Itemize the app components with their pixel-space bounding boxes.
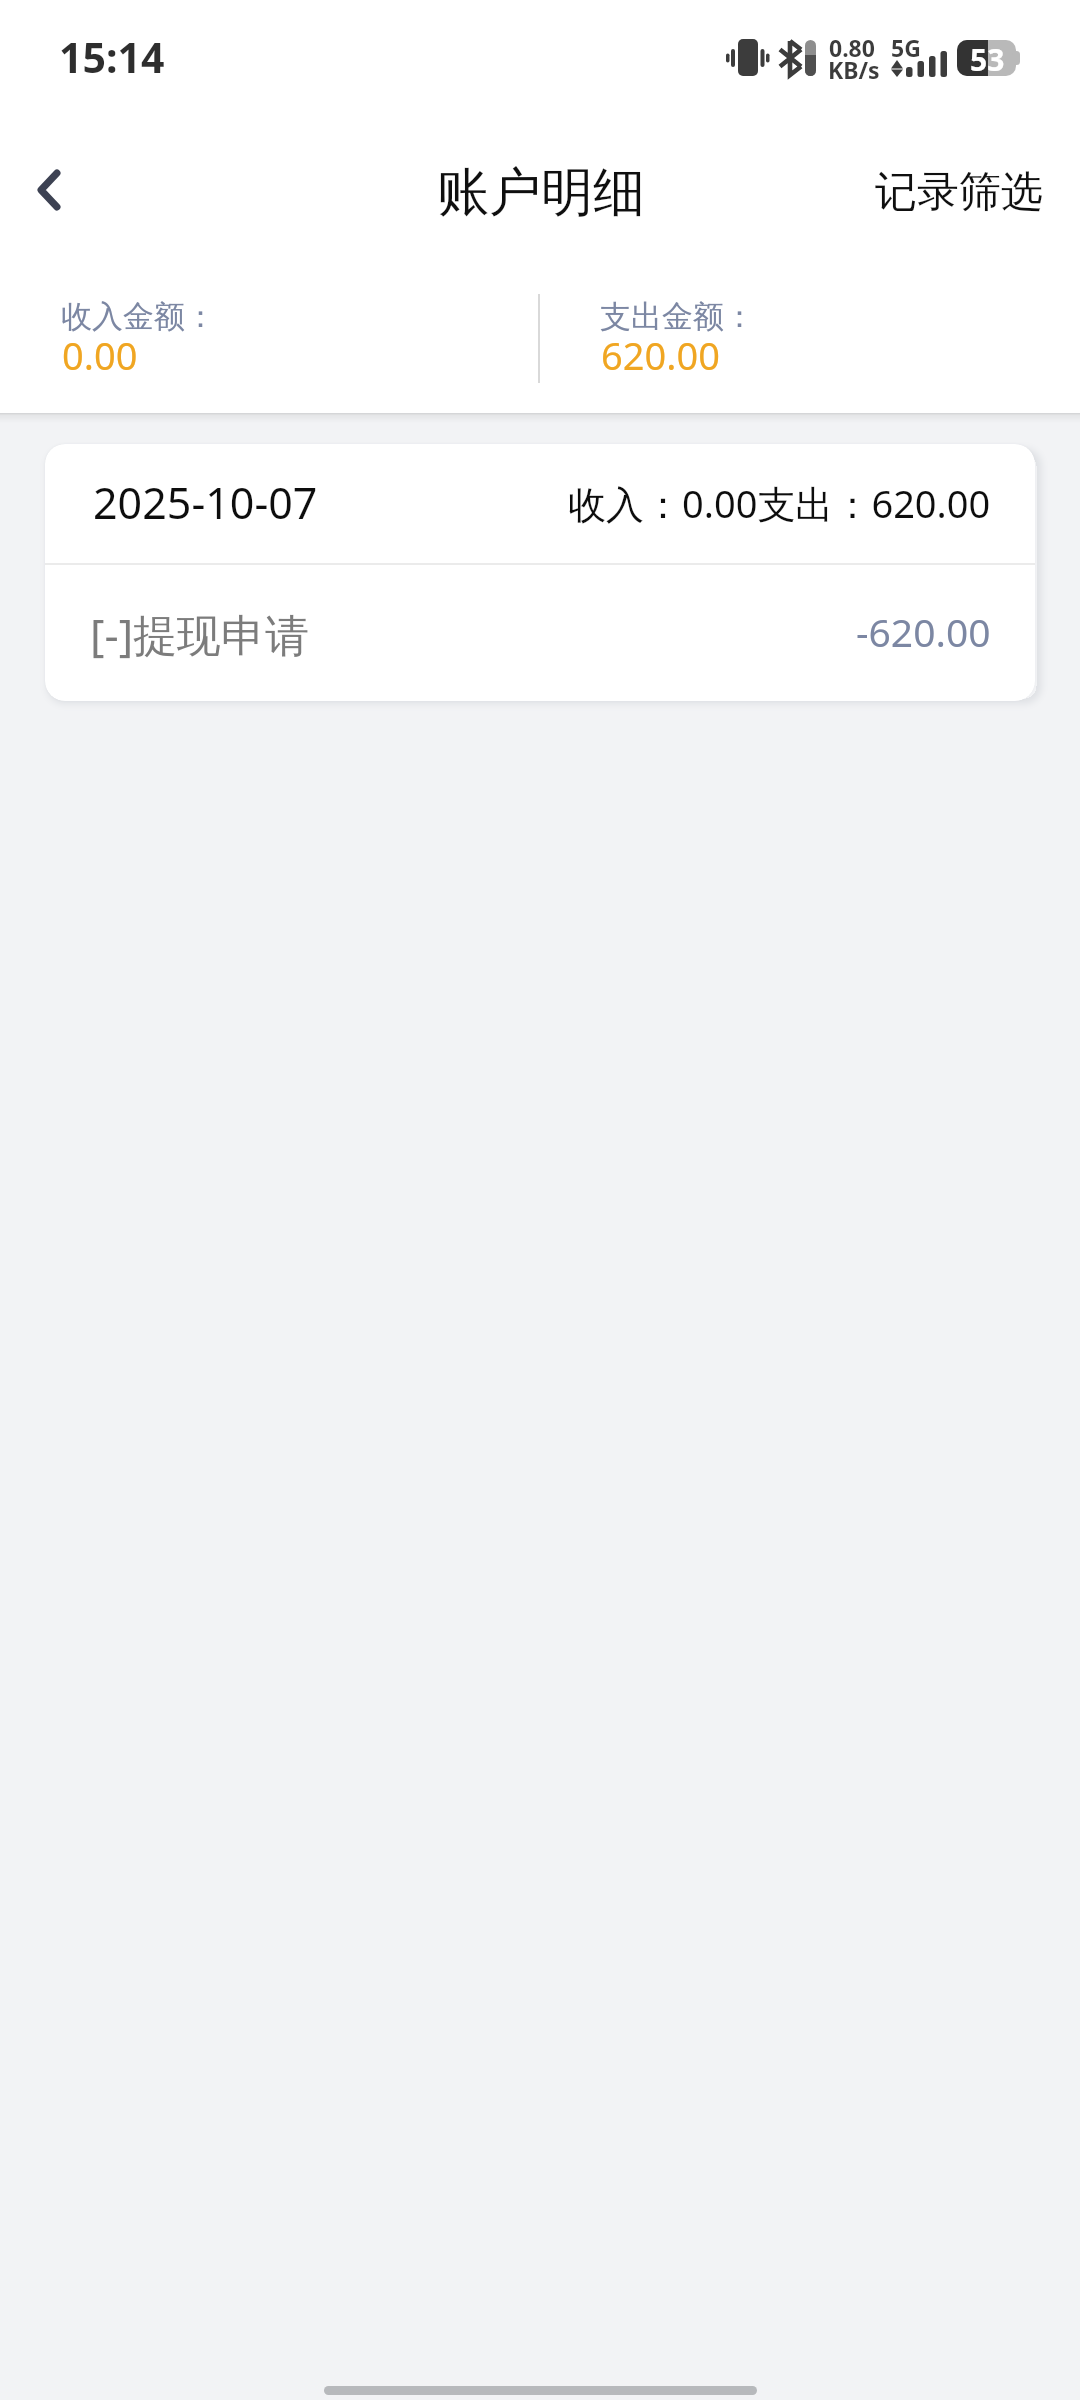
staticText: 支出金额：	[600, 297, 755, 336]
staticText: 收入：0.00支出：620.00	[568, 477, 991, 529]
staticText: 53	[970, 39, 1005, 80]
staticText: -620.00	[856, 605, 991, 658]
button[interactable]: 2025-10-07	[45, 444, 1035, 563]
button[interactable]: Back	[0, 130, 98, 250]
staticText: 2025-10-07	[93, 473, 318, 532]
staticText: 5G	[891, 32, 921, 63]
staticText: 0.00	[62, 329, 138, 381]
button[interactable]: 记录筛选	[838, 130, 1080, 250]
staticText: 记录筛选	[875, 166, 1043, 219]
staticText: 0.80	[829, 32, 875, 63]
staticText: 15:14	[59, 29, 165, 85]
staticText: [-]提现申请	[90, 604, 310, 664]
staticText: KB/s	[828, 54, 880, 85]
staticText: 账户明细	[437, 160, 645, 226]
button[interactable]: [-]提现申请	[45, 565, 1035, 701]
staticText: 收入金额：	[61, 297, 216, 336]
staticText: 620.00	[601, 329, 720, 381]
